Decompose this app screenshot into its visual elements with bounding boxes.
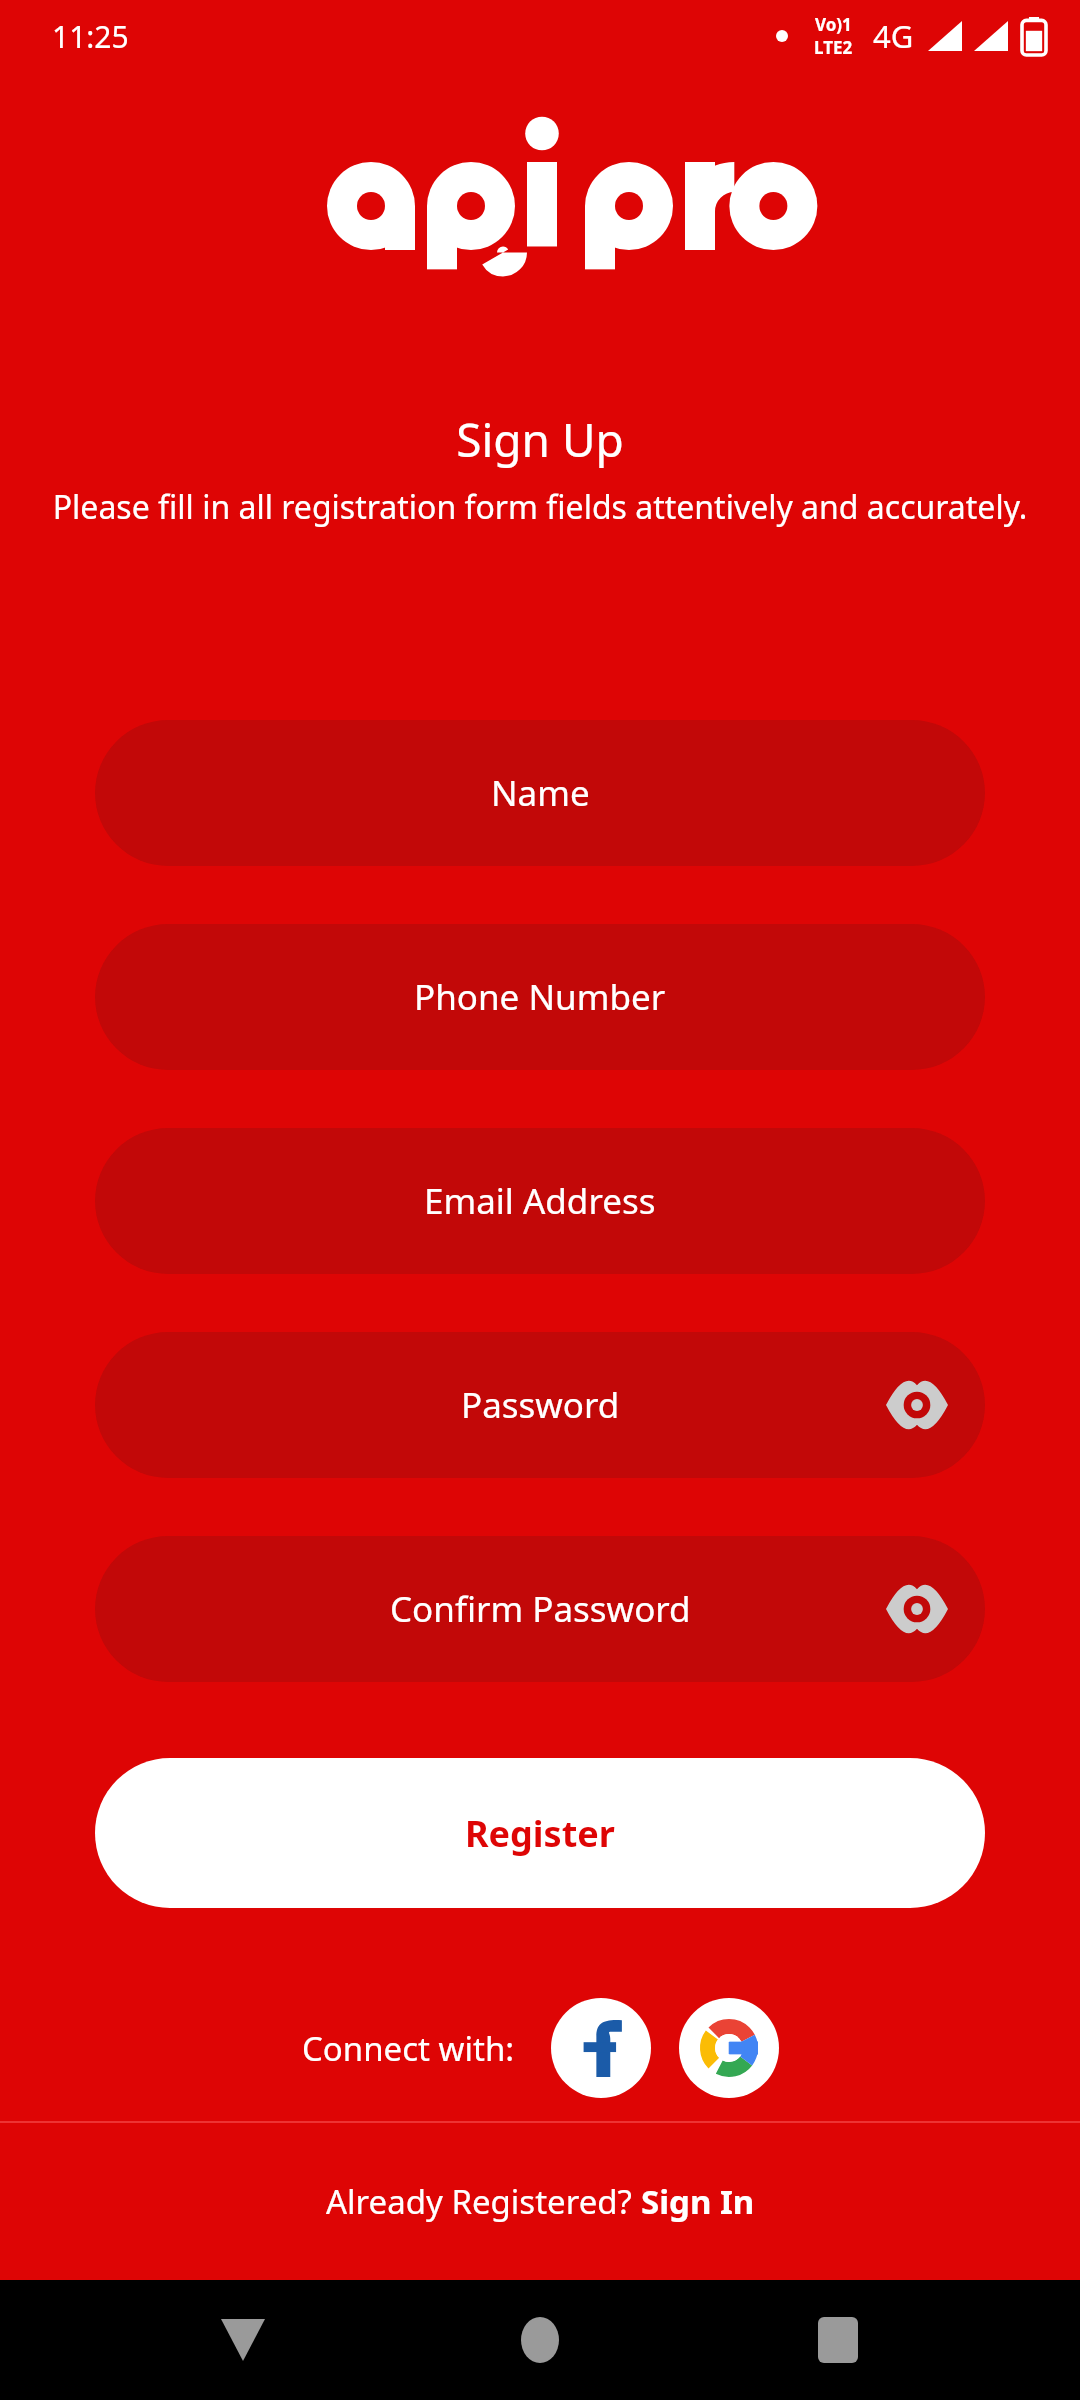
button[interactable]: Register: [95, 1758, 985, 1908]
button[interactable]: Email Address: [95, 1128, 985, 1274]
staticText: Sign In: [641, 2179, 755, 2224]
staticText: Name: [491, 769, 590, 817]
button[interactable]: Recent apps: [783, 2285, 893, 2395]
button[interactable]: Show password: [875, 1567, 959, 1651]
staticText: LTE2: [814, 36, 853, 59]
button[interactable]: Confirm Password: [95, 1536, 985, 1682]
staticText: Vo)1: [815, 13, 852, 36]
staticText: Connect with:: [302, 2026, 515, 2071]
staticText: 4G: [873, 15, 914, 57]
staticText: Sign Up: [456, 408, 624, 471]
button[interactable]: Name: [95, 720, 985, 866]
staticText: Confirm Password: [390, 1585, 691, 1633]
staticText: Please fill in all registration form fie…: [10, 485, 1070, 529]
staticText: 11:25: [52, 16, 129, 57]
staticText: Phone Number: [414, 973, 666, 1021]
staticText: Password: [461, 1381, 620, 1429]
button[interactable]: Back: [188, 2285, 298, 2395]
button[interactable]: Phone Number: [95, 924, 985, 1070]
button[interactable]: Password: [95, 1332, 985, 1478]
button[interactable]: Sign up with Google: [679, 1998, 779, 2098]
staticText: Register: [465, 1809, 615, 1858]
button[interactable]: Sign up with Facebook: [551, 1998, 651, 2098]
staticText: Email Address: [424, 1177, 656, 1225]
staticText: Already Registered?: [326, 2179, 641, 2224]
button[interactable]: Already Registered?: [0, 2122, 1080, 2280]
button[interactable]: Home: [485, 2285, 595, 2395]
button[interactable]: Show password: [875, 1363, 959, 1447]
